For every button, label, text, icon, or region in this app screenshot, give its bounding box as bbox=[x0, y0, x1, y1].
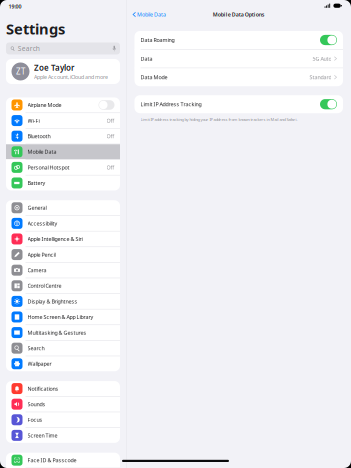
button[interactable]: ZT bbox=[6, 59, 120, 84]
button[interactable]: Limit IP Address Tracking bbox=[134, 95, 343, 113]
staticText: Airplane Mode bbox=[27, 101, 61, 108]
staticText: 5G Auto bbox=[312, 55, 331, 62]
button[interactable]: Search bbox=[6, 42, 120, 54]
button[interactable]: Screen Time bbox=[6, 428, 120, 443]
staticText: Search bbox=[18, 44, 40, 53]
staticText: Data Mode bbox=[140, 74, 167, 81]
button[interactable]: Sounds bbox=[6, 397, 120, 412]
staticText: Face ID & Passcode bbox=[27, 457, 76, 464]
button[interactable]: Multitasking & Gestures bbox=[6, 325, 120, 340]
staticText: Zoe Taylor bbox=[34, 62, 74, 73]
staticText: Focus bbox=[27, 416, 42, 423]
staticText: Notifications bbox=[27, 385, 58, 392]
button[interactable]: Control Centre bbox=[6, 278, 120, 293]
staticText: Bluetooth bbox=[27, 133, 50, 140]
staticText: Limit IP Address Tracking bbox=[140, 101, 201, 108]
button[interactable]: Apple Pencil bbox=[6, 247, 120, 262]
staticText: Apple Pencil bbox=[27, 251, 55, 258]
button[interactable]: Focus bbox=[6, 412, 120, 427]
button[interactable]: Wi-Fi bbox=[6, 113, 120, 128]
button[interactable]: Personal Hotspot bbox=[6, 160, 120, 175]
staticText: Accessibility bbox=[27, 220, 57, 227]
button[interactable]: Bluetooth bbox=[6, 129, 120, 144]
button[interactable]: General bbox=[6, 200, 120, 215]
staticText: Apple Intelligence & Siri bbox=[27, 235, 82, 242]
staticText: Screen Time bbox=[27, 432, 57, 439]
staticText: Control Centre bbox=[27, 282, 61, 289]
staticText: Mobile Data bbox=[137, 11, 166, 18]
staticText: Personal Hotspot bbox=[27, 164, 69, 171]
staticText: Settings bbox=[6, 19, 65, 38]
staticText: General bbox=[27, 204, 46, 211]
button[interactable]: Notifications bbox=[6, 381, 120, 396]
button[interactable]: Data bbox=[134, 50, 343, 68]
staticText: Display & Brightness bbox=[27, 298, 77, 305]
button[interactable]: Data Roaming bbox=[134, 31, 343, 49]
staticText: Multitasking & Gestures bbox=[27, 329, 86, 336]
staticText: Battery bbox=[27, 179, 45, 186]
button[interactable]: Mobile Data bbox=[132, 8, 166, 21]
button[interactable]: Mobile Data bbox=[6, 144, 120, 159]
staticText: Mobile Data bbox=[27, 148, 56, 155]
staticText: Off bbox=[106, 117, 114, 124]
button[interactable]: Data Mode bbox=[134, 68, 343, 86]
staticText: Data bbox=[140, 55, 152, 62]
staticText: Limit IP address tracking by hiding your… bbox=[140, 117, 297, 122]
staticText: Off bbox=[106, 133, 114, 140]
button[interactable]: Face ID & Passcode bbox=[6, 453, 120, 468]
button[interactable]: Display & Brightness bbox=[6, 294, 120, 309]
staticText: Off bbox=[106, 164, 114, 171]
staticText: Data Roaming bbox=[140, 36, 174, 44]
staticText: Wi-Fi bbox=[27, 117, 39, 124]
staticText: Wallpaper bbox=[27, 360, 51, 367]
button[interactable]: Accessibility bbox=[6, 216, 120, 231]
staticText: 19:00 bbox=[8, 3, 21, 10]
staticText: ZT bbox=[16, 66, 25, 77]
button[interactable]: Wallpaper bbox=[6, 356, 120, 371]
button[interactable]: Home Screen & App Library bbox=[6, 309, 120, 324]
staticText: Mobile Data Options bbox=[213, 11, 265, 18]
staticText: Standard bbox=[309, 74, 331, 81]
staticText: Sounds bbox=[27, 401, 45, 408]
staticText: Search bbox=[27, 345, 44, 352]
staticText: Camera bbox=[27, 267, 46, 274]
button[interactable]: Airplane Mode bbox=[6, 97, 120, 112]
button[interactable]: Camera bbox=[6, 263, 120, 278]
button[interactable]: Apple Intelligence & Siri bbox=[6, 231, 120, 246]
staticText: Home Screen & App Library bbox=[27, 313, 93, 320]
button[interactable]: Battery bbox=[6, 175, 120, 190]
button[interactable]: Search bbox=[6, 341, 120, 356]
staticText: Apple Account, iCloud and more bbox=[34, 73, 108, 81]
